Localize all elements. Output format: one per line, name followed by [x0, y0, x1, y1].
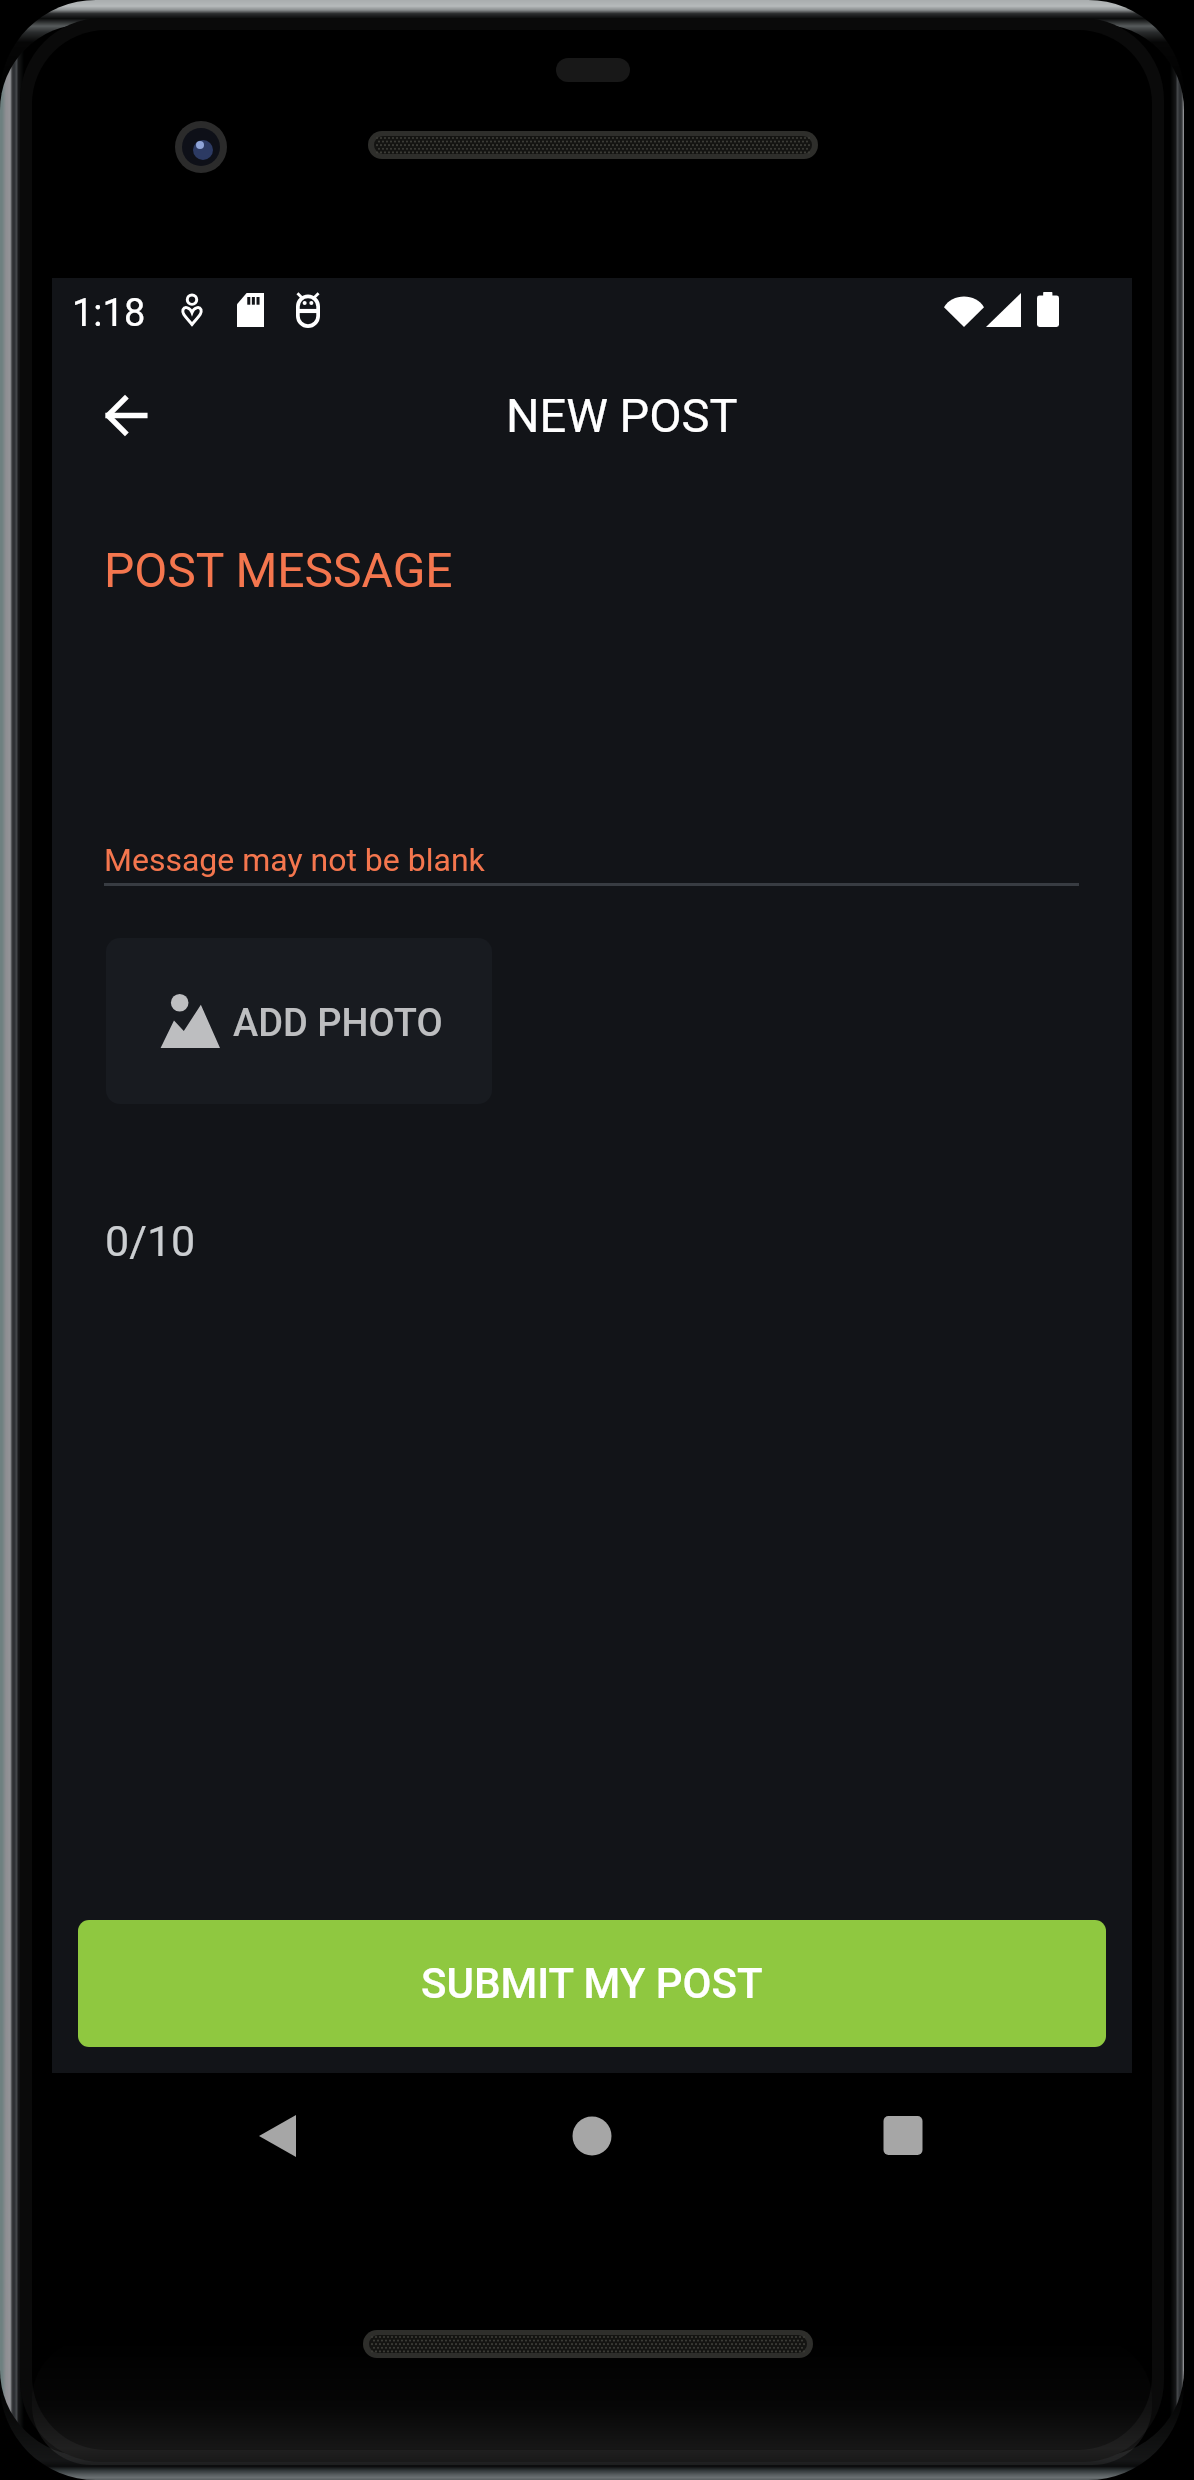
staticText: ADD PHOTO [233, 1001, 443, 1046]
button[interactable]: ADD PHOTO [106, 938, 492, 1104]
button[interactable]: SUBMIT MY POST [78, 1920, 1106, 2047]
staticText: POST MESSAGE [104, 542, 453, 598]
staticText: SUBMIT MY POST [421, 1959, 763, 2008]
button[interactable]: Back [71, 360, 181, 470]
staticText: Message may not be blank [104, 841, 485, 879]
staticText: 1:18 [72, 291, 146, 336]
staticText: 0/10 [105, 1216, 196, 1266]
staticText: NEW POST [506, 388, 738, 443]
